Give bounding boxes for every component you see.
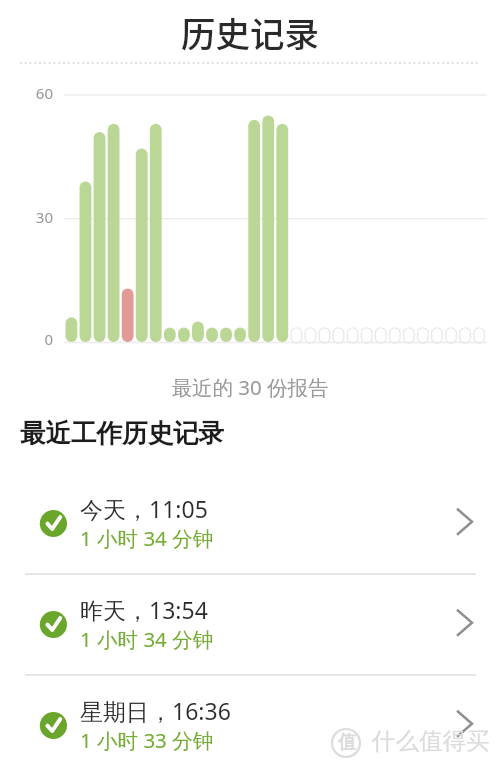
staticText: 什么值得买 <box>372 726 490 756</box>
button[interactable]: 昨天，13:54 <box>0 573 500 674</box>
button[interactable]: 星期日，16:36 <box>0 674 500 766</box>
staticText: 昨天，13:54 <box>80 594 208 625</box>
staticText: 值 <box>338 731 356 754</box>
staticText: 星期日，16:36 <box>80 695 231 726</box>
staticText: 1 小时 34 分钟 <box>80 524 214 552</box>
button[interactable]: 今天，11:05 <box>0 472 500 573</box>
staticText: 1 小时 33 分钟 <box>80 726 214 754</box>
staticText: 0 <box>0 329 53 349</box>
staticText: 30 <box>0 207 53 227</box>
staticText: 今天，11:05 <box>80 493 208 524</box>
staticText: 历史记录 <box>0 7 500 57</box>
staticText: 最近的 30 份报告 <box>0 373 500 401</box>
staticText: 60 <box>0 83 53 103</box>
staticText: 1 小时 34 分钟 <box>80 625 214 653</box>
staticText: 最近工作历史记录 <box>20 417 224 449</box>
